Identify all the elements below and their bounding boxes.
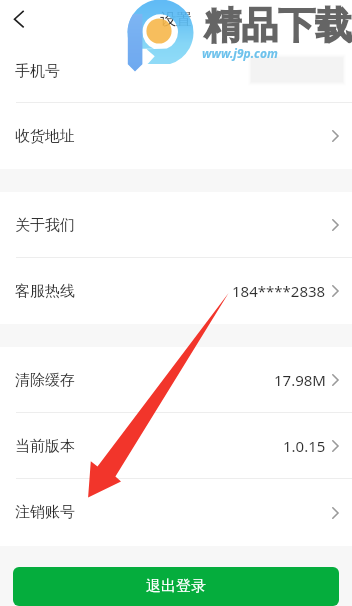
staticText: www.j9p.com bbox=[202, 45, 278, 61]
button[interactable]: 注销账号 bbox=[0, 479, 352, 546]
staticText: 收货地址 bbox=[15, 127, 75, 146]
button[interactable]: 收货地址 bbox=[0, 103, 352, 169]
staticText: 当前版本 bbox=[15, 437, 75, 456]
button[interactable]: 手机号 bbox=[0, 40, 352, 103]
button[interactable]: 当前版本 bbox=[0, 413, 352, 479]
staticText: 注销账号 bbox=[15, 503, 75, 522]
button[interactable]: 关于我们 bbox=[0, 192, 352, 258]
button[interactable]: 清除缓存 bbox=[0, 347, 352, 413]
staticText: 手机号 bbox=[15, 62, 60, 81]
staticText: 184****2838 bbox=[232, 281, 326, 301]
staticText: 清除缓存 bbox=[15, 371, 75, 390]
button[interactable]: 客服热线 bbox=[0, 258, 352, 324]
staticText: 17.98M bbox=[274, 370, 326, 390]
staticText: 精品下载 bbox=[204, 2, 352, 49]
staticText: 退出登录 bbox=[146, 577, 206, 596]
staticText: 设置 bbox=[160, 10, 192, 30]
staticText: 关于我们 bbox=[15, 216, 75, 235]
staticText: 1.0.15 bbox=[283, 436, 326, 456]
button[interactable]: Back bbox=[0, 0, 40, 40]
staticText: 客服热线 bbox=[15, 282, 75, 301]
button[interactable]: 退出登录 bbox=[13, 567, 339, 606]
